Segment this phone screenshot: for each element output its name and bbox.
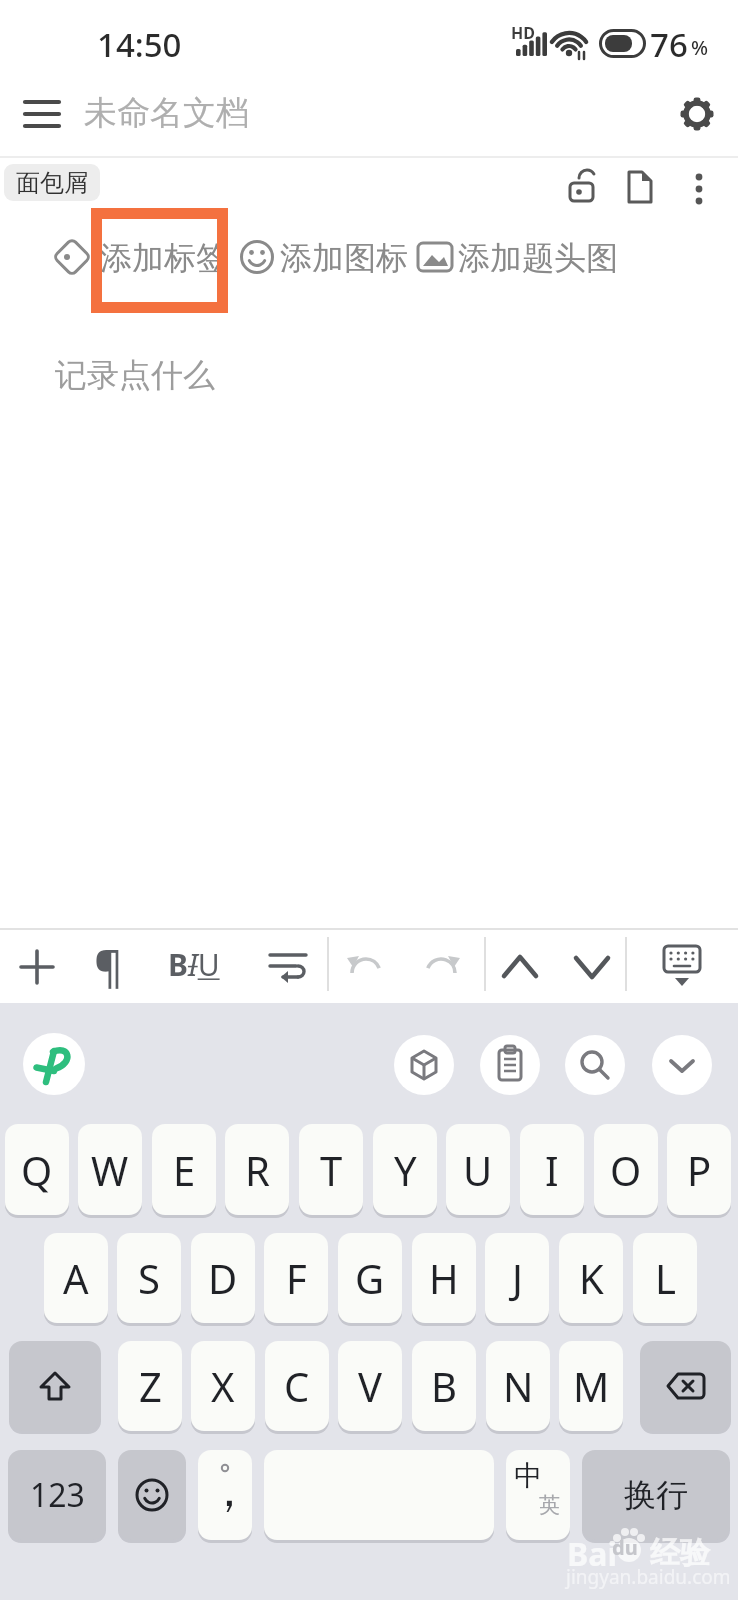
staticText: Z [139,1359,162,1413]
button[interactable]: H [412,1233,476,1323]
button[interactable]: BIU [168,944,232,990]
staticText: D [208,1251,238,1305]
button[interactable] [23,1033,85,1095]
staticText: M [573,1359,610,1413]
button[interactable]: D [191,1233,255,1323]
button[interactable] [652,1035,712,1095]
staticText: K [579,1251,604,1305]
button[interactable]: Z [118,1341,182,1431]
button[interactable]: P [667,1124,731,1215]
button[interactable] [660,941,704,991]
button[interactable] [640,1341,731,1431]
staticText: N [503,1359,534,1413]
staticText: 未命名文档 [84,92,249,134]
staticText: W [91,1143,129,1197]
staticText: 记录点什么 [55,355,215,395]
button[interactable]: S [117,1233,181,1323]
staticText: Y [394,1143,417,1197]
button[interactable]: Q [5,1124,69,1215]
staticText: E [173,1143,196,1197]
staticText: 换行 [624,1475,688,1515]
button[interactable] [566,170,600,204]
staticText: P [687,1143,712,1197]
button[interactable]: J [485,1233,549,1323]
staticText: F [286,1251,307,1305]
button[interactable]: O [594,1124,658,1215]
button[interactable]: ¶ [90,936,134,994]
button[interactable]: L [633,1233,697,1323]
staticText: 添加图标 [280,238,408,278]
button[interactable] [419,947,463,987]
staticText: jingyan.baidu.com [566,1564,731,1590]
staticText: A [63,1251,89,1305]
staticText: 经验 [650,1534,710,1572]
staticText: 添加题头图 [458,238,618,278]
staticText: C [284,1359,310,1413]
button[interactable]: 添加题头图 [416,236,602,278]
staticText: J [512,1251,523,1305]
button[interactable]: U [446,1124,510,1215]
staticText: BIU [168,944,220,985]
button[interactable]: F [264,1233,328,1323]
button[interactable]: 换行 [582,1450,730,1540]
staticText: T [320,1143,343,1197]
button[interactable]: Y [373,1124,437,1215]
button[interactable]: A [44,1233,108,1323]
staticText: du [612,1534,638,1561]
staticText: 中 [514,1458,542,1493]
button[interactable] [266,945,310,989]
button[interactable]: 添加图标 [238,236,390,278]
button[interactable]: V [338,1341,402,1431]
staticText: U [463,1143,493,1197]
button[interactable] [498,945,542,989]
button[interactable]: C [265,1341,329,1431]
button[interactable]: ， [198,1450,252,1540]
staticText: ， [206,1462,252,1520]
button[interactable]: X [191,1341,255,1431]
button[interactable] [9,1341,101,1431]
button[interactable] [480,1035,540,1095]
button[interactable]: 123 [8,1450,106,1540]
button[interactable] [678,95,716,133]
button[interactable]: E [152,1124,216,1215]
button[interactable]: T [299,1124,363,1215]
staticText: V [358,1359,382,1413]
staticText: 面包屑 [16,168,88,198]
staticText: 76 [650,22,688,67]
button[interactable] [118,1450,186,1540]
staticText: H [429,1251,459,1305]
staticText: X [211,1359,235,1413]
button[interactable] [686,168,712,208]
staticText: Q [21,1143,53,1197]
button[interactable] [17,947,57,987]
staticText: O [610,1143,642,1197]
staticText: 123 [30,1473,85,1517]
button[interactable]: 中 [506,1450,570,1540]
staticText: B [431,1359,457,1413]
button[interactable] [20,96,64,136]
button[interactable] [570,945,614,989]
button[interactable]: N [486,1341,550,1431]
button[interactable]: W [78,1124,142,1215]
button[interactable]: 面包屑 [4,164,100,201]
button[interactable]: I [520,1124,584,1215]
staticText: HD [511,22,535,44]
button[interactable] [565,1035,625,1095]
button[interactable]: 添加标签 [50,236,232,278]
button[interactable]: K [559,1233,623,1323]
staticText: 英 [539,1492,560,1518]
button[interactable] [344,947,388,987]
button[interactable] [394,1035,454,1095]
button[interactable]: G [338,1233,402,1323]
button[interactable]: M [559,1341,623,1431]
staticText: Bai [567,1532,618,1576]
button[interactable]: R [225,1124,289,1215]
staticText: R [245,1143,270,1197]
staticText: I [545,1143,559,1197]
staticText: S [138,1251,160,1305]
button[interactable]: B [412,1341,476,1431]
staticText: % [691,34,709,61]
button[interactable] [624,168,656,206]
staticText: 添加标签 [100,238,228,278]
